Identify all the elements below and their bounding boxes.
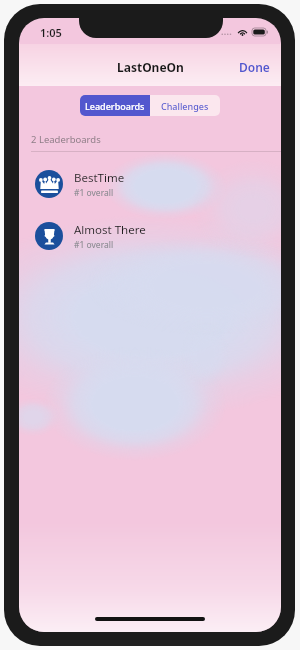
staticText: Almost There: [74, 222, 146, 238]
staticText: #1 overall: [74, 239, 114, 251]
staticText: Leaderboards: [85, 100, 145, 112]
staticText: BestTime: [74, 170, 125, 186]
button[interactable]: Almost There: [19, 210, 281, 262]
staticText: LastOneOn: [117, 59, 184, 75]
button[interactable]: Challenges: [150, 95, 220, 116]
staticText: Challenges: [161, 100, 209, 112]
staticText: 1:05: [40, 25, 62, 40]
button[interactable]: Done: [228, 52, 281, 82]
staticText: #1 overall: [74, 187, 114, 199]
staticText: Done: [239, 59, 270, 75]
staticText: 2 Leaderboards: [31, 133, 101, 146]
button[interactable]: BestTime: [19, 158, 281, 210]
button[interactable]: Leaderboards: [80, 95, 150, 116]
